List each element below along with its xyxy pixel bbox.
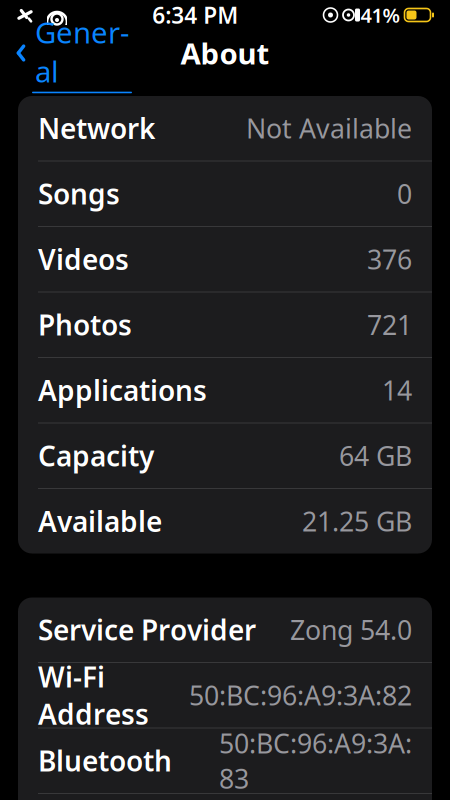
staticText: 6:34 PM (152, 0, 238, 30)
staticText: 376 (367, 241, 412, 277)
staticText: Songs (38, 175, 120, 212)
staticText: Videos (38, 241, 129, 278)
staticText: Network (38, 110, 155, 147)
staticText: General (35, 13, 129, 91)
button[interactable]: Songs (18, 161, 432, 227)
staticText: Available (38, 503, 162, 540)
staticText: 41% (360, 2, 400, 28)
staticText: Applications (38, 372, 207, 409)
staticText: Bluetooth (38, 742, 172, 779)
staticText: About (180, 33, 269, 72)
button[interactable]: Videos (18, 227, 432, 292)
staticText: 14 (382, 372, 412, 408)
staticText: 50:BC:96:A9:3A:83 (219, 725, 412, 796)
staticText: Photos (38, 306, 132, 343)
staticText: Capacity (38, 437, 154, 474)
button[interactable]: Available (18, 489, 432, 553)
staticText: 721 (367, 307, 412, 342)
button[interactable]: Wi-Fi Address (18, 663, 432, 728)
staticText: Zong 54.0 (290, 612, 412, 647)
staticText: Service Provider (38, 611, 256, 648)
staticText: Not Available (246, 110, 412, 146)
button[interactable]: Capacity (18, 423, 432, 489)
button[interactable]: Photos (18, 292, 432, 358)
button[interactable]: Network (18, 96, 432, 161)
staticText: 64 GB (339, 438, 412, 473)
staticText: 50:BC:96:A9:3A:82 (189, 677, 412, 713)
staticText: 0 (397, 176, 412, 211)
staticText: 21.25 GB (302, 503, 412, 539)
button[interactable]: Applications (18, 358, 432, 423)
staticText: Wi-Fi Address (38, 658, 149, 732)
button[interactable]: General (8, 9, 138, 97)
button[interactable]: Service Provider (18, 597, 432, 663)
button[interactable]: Bluetooth (18, 728, 432, 794)
